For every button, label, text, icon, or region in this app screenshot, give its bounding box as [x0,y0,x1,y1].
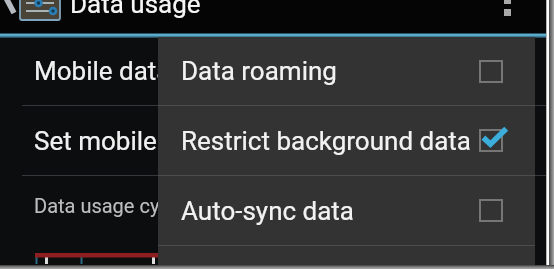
staticText: Mobile data [34,56,171,86]
staticText: Auto-sync data [181,196,471,226]
staticText: Data roaming [181,56,471,86]
button[interactable]: Set mobile data limit [0,106,554,175]
button[interactable]: Data usage [19,0,61,20]
button[interactable]: Mobile data [0,37,554,105]
staticText: Data usage cycle [34,194,186,217]
staticText: Restrict background data [181,126,471,156]
button[interactable]: Auto-sync data [158,176,535,245]
staticText: Data usage [70,0,201,19]
staticText: Set mobile data limit [34,126,272,156]
button[interactable]: Data roaming [158,37,535,105]
button[interactable]: Navigate up [0,0,20,24]
button[interactable]: Restrict background data [158,106,535,175]
button[interactable]: More options [496,0,520,26]
